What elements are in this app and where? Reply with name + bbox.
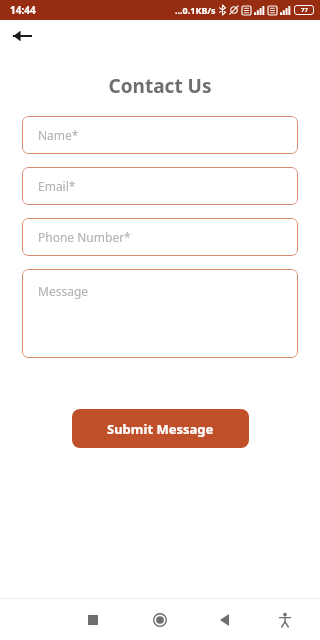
button[interactable]: Message (22, 269, 298, 358)
staticText: ...0.1KB/s (175, 4, 216, 16)
staticText: Name* (38, 127, 79, 143)
button[interactable]: Back (209, 605, 239, 635)
staticText: Message (38, 283, 89, 299)
staticText: 77 (301, 6, 308, 14)
staticText: Email* (38, 178, 76, 194)
button[interactable]: Accessibility (270, 605, 300, 635)
staticText: Phone Number* (38, 229, 131, 245)
staticText: 14:44 (10, 3, 36, 17)
button[interactable]: Submit Message (72, 409, 249, 448)
staticText: Submit Message (107, 420, 214, 438)
staticText: Contact Us (0, 73, 320, 99)
button[interactable]: Phone Number* (22, 218, 298, 256)
button[interactable]: Email* (22, 167, 298, 205)
button[interactable]: Name* (22, 116, 298, 154)
button[interactable]: Back (7, 21, 37, 51)
button[interactable]: Home (145, 605, 175, 635)
button[interactable]: Recents (78, 605, 108, 635)
